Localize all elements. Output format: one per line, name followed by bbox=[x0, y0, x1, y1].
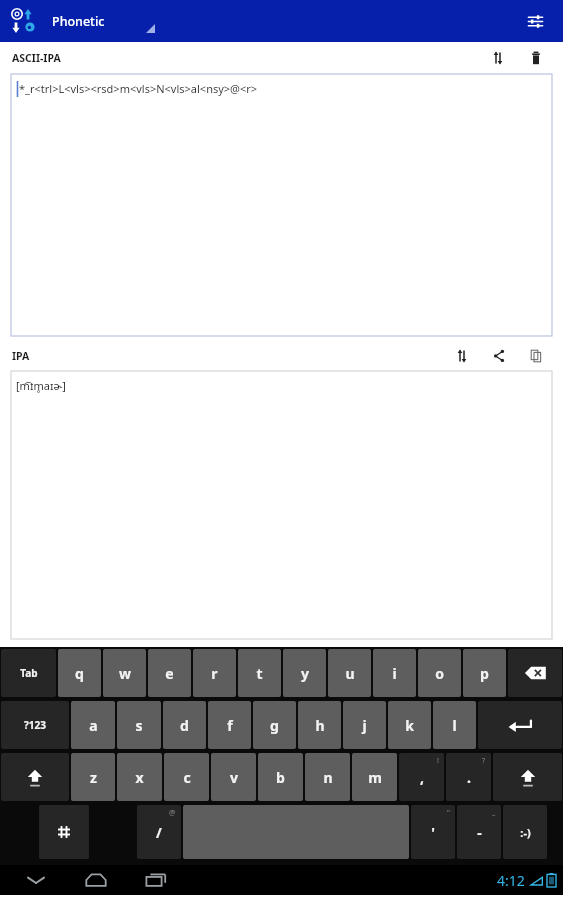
staticText: w bbox=[119, 664, 131, 683]
staticText: ASCII-IPA bbox=[12, 51, 61, 65]
button[interactable]: y bbox=[283, 649, 326, 697]
staticText: t bbox=[256, 664, 263, 683]
staticText: - bbox=[477, 823, 482, 842]
staticText: e bbox=[165, 664, 174, 683]
staticText: i bbox=[392, 664, 397, 683]
button[interactable]: . bbox=[446, 753, 491, 801]
staticText: o bbox=[435, 664, 444, 683]
staticText: p bbox=[480, 664, 489, 683]
staticText: 4:12 bbox=[497, 871, 525, 890]
staticText: v bbox=[230, 768, 238, 787]
button[interactable]: n bbox=[305, 753, 350, 801]
staticText: a bbox=[89, 716, 98, 735]
button[interactable]: i bbox=[373, 649, 416, 697]
staticText: y bbox=[301, 664, 309, 683]
button[interactable]: r bbox=[193, 649, 236, 697]
staticText: ! bbox=[437, 756, 439, 766]
staticText: j bbox=[362, 716, 367, 735]
staticText: f bbox=[227, 716, 233, 735]
button[interactable]: App icon bbox=[6, 3, 42, 39]
button[interactable]: u bbox=[328, 649, 371, 697]
button[interactable]: p bbox=[463, 649, 506, 697]
button[interactable]: o bbox=[418, 649, 461, 697]
button[interactable]: s bbox=[117, 701, 161, 749]
staticText: b bbox=[276, 768, 285, 787]
staticText: k bbox=[405, 716, 414, 735]
button[interactable]: [m͡ɪm̥aɪə˞] bbox=[11, 371, 552, 639]
staticText: l bbox=[452, 716, 457, 735]
button[interactable]: ' bbox=[411, 805, 455, 859]
staticText: ? bbox=[482, 756, 486, 766]
button[interactable]: g bbox=[253, 701, 296, 749]
button[interactable]: shift bbox=[1, 753, 69, 801]
button[interactable]: k bbox=[388, 701, 431, 749]
button[interactable]: v bbox=[211, 753, 256, 801]
button[interactable]: t bbox=[238, 649, 281, 697]
button[interactable]: ?123 bbox=[1, 701, 69, 749]
staticText: h bbox=[315, 716, 325, 735]
button[interactable]: Clear bbox=[523, 45, 549, 71]
button[interactable]: e bbox=[148, 649, 191, 697]
button[interactable]: Swap bbox=[449, 343, 475, 369]
button[interactable]: *_r<trl>L<vls><rsd>m<vls>N<vls>al<nsy>@<… bbox=[11, 74, 552, 336]
staticText: " bbox=[447, 808, 450, 818]
button[interactable]: m bbox=[352, 753, 397, 801]
button[interactable]: - bbox=[457, 805, 501, 859]
staticText: . bbox=[467, 768, 471, 787]
button[interactable]: backspace bbox=[508, 649, 562, 697]
button[interactable]: q bbox=[58, 649, 101, 697]
staticText: q bbox=[75, 664, 84, 683]
button[interactable]: :-) bbox=[503, 805, 547, 859]
staticText: Phonetic bbox=[52, 13, 105, 30]
staticText: , bbox=[420, 768, 424, 787]
staticText: d bbox=[180, 716, 189, 735]
button[interactable]: b bbox=[258, 753, 303, 801]
button[interactable]: Home bbox=[74, 865, 118, 895]
staticText: g bbox=[270, 716, 279, 735]
button[interactable]: lang bbox=[39, 805, 89, 859]
staticText: @ bbox=[169, 808, 176, 818]
staticText: ?123 bbox=[24, 718, 46, 732]
button[interactable]: z bbox=[71, 753, 115, 801]
button[interactable]: / bbox=[137, 805, 181, 859]
staticText: ' bbox=[431, 823, 435, 842]
button[interactable]: enter bbox=[478, 701, 562, 749]
button[interactable]: l bbox=[433, 701, 476, 749]
button[interactable]: Copy bbox=[523, 343, 549, 369]
staticText: n bbox=[323, 768, 333, 787]
button[interactable]: Tab bbox=[1, 649, 56, 697]
staticText: IPA bbox=[12, 349, 30, 363]
button[interactable]: Share bbox=[486, 343, 512, 369]
staticText: [m͡ɪm̥aɪə˞] bbox=[16, 378, 66, 393]
staticText: :-) bbox=[520, 825, 531, 840]
button[interactable]: , bbox=[399, 753, 444, 801]
button[interactable]: Hide keyboard bbox=[14, 865, 58, 895]
staticText: Tab bbox=[20, 666, 38, 680]
button[interactable]: x bbox=[117, 753, 162, 801]
button[interactable]: d bbox=[163, 701, 206, 749]
button[interactable]: j bbox=[343, 701, 386, 749]
staticText: c bbox=[183, 768, 191, 787]
button[interactable]: Settings bbox=[517, 3, 553, 39]
staticText: x bbox=[135, 768, 144, 787]
staticText: _ bbox=[492, 808, 496, 818]
staticText: *_r<trl>L<vls><rsd>m<vls>N<vls>al<nsy>@<… bbox=[19, 81, 258, 96]
staticText: / bbox=[156, 823, 162, 842]
staticText: u bbox=[345, 664, 355, 683]
staticText: s bbox=[135, 716, 143, 735]
button[interactable]: w bbox=[103, 649, 146, 697]
button[interactable]: a bbox=[71, 701, 115, 749]
button[interactable]: Recent apps bbox=[134, 865, 178, 895]
button[interactable]: c bbox=[164, 753, 209, 801]
button[interactable]: shift bbox=[493, 753, 562, 801]
button[interactable]: f bbox=[208, 701, 251, 749]
staticText: z bbox=[90, 768, 97, 787]
staticText: r bbox=[211, 664, 218, 683]
button[interactable]: Swap bbox=[485, 45, 511, 71]
button[interactable]: h bbox=[298, 701, 341, 749]
staticText: m bbox=[368, 768, 382, 787]
